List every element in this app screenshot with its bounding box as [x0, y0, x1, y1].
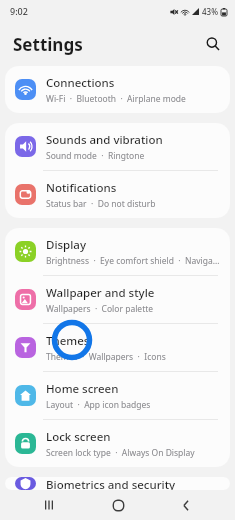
staticText: Brightness · Eye comfort shield · Naviga…: [46, 255, 220, 267]
staticText: Settings: [13, 33, 83, 56]
button[interactable]: Lock screen: [5, 420, 230, 467]
button[interactable]: Home screen: [5, 372, 230, 419]
staticText: Wallpapers · Color palette: [46, 303, 154, 315]
staticText: Notifications: [46, 180, 117, 196]
staticText: Themes: [46, 333, 90, 349]
button[interactable]: Display: [5, 228, 230, 275]
button[interactable]: Sounds and vibration: [5, 123, 230, 170]
button[interactable]: Recents: [29, 490, 69, 520]
staticText: Status bar · Do not disturb: [46, 198, 156, 210]
staticText: Sound mode · Ringtone: [46, 150, 145, 162]
staticText: 9:02: [10, 5, 28, 17]
staticText: Lock screen: [46, 429, 111, 445]
button[interactable]: Notifications: [5, 171, 230, 218]
staticText: Connections: [46, 75, 115, 91]
staticText: Wallpaper and style: [46, 285, 155, 301]
staticText: Layout · App icon badges: [46, 399, 151, 411]
button[interactable]: Wallpaper and style: [5, 276, 230, 323]
button[interactable]: Themes: [5, 324, 230, 371]
staticText: Wi-Fi · Bluetooth · Airplane mode: [46, 93, 186, 105]
button[interactable]: Biometrics and security: [5, 477, 230, 490]
staticText: 43%: [202, 6, 218, 17]
button[interactable]: Home: [98, 490, 138, 520]
button[interactable]: Back: [166, 490, 206, 520]
staticText: Biometrics and security: [46, 477, 176, 490]
staticText: Sounds and vibration: [46, 132, 163, 148]
button[interactable]: Search: [199, 30, 227, 58]
button[interactable]: Connections: [5, 66, 230, 113]
staticText: Screen lock type · Always On Display: [46, 447, 195, 459]
staticText: Themes · Wallpapers · Icons: [46, 351, 166, 363]
staticText: Home screen: [46, 381, 119, 397]
staticText: Display: [46, 237, 86, 253]
